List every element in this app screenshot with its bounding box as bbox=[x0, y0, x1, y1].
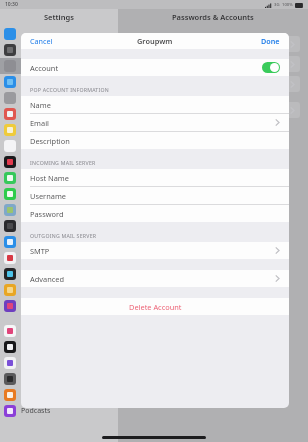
button[interactable]: Email bbox=[21, 114, 289, 132]
button[interactable] bbox=[4, 323, 118, 339]
staticText: Settings bbox=[44, 12, 74, 22]
staticText: 100% bbox=[282, 2, 293, 8]
button[interactable]: Username bbox=[21, 187, 289, 205]
button[interactable] bbox=[4, 154, 118, 170]
staticText: 10:30 bbox=[5, 1, 18, 8]
button[interactable]: Podcasts bbox=[4, 403, 118, 419]
staticText: OUTGOING MAIL SERVER bbox=[30, 232, 97, 239]
button[interactable]: Books bbox=[4, 387, 118, 403]
button[interactable] bbox=[4, 170, 118, 186]
button[interactable]: Name bbox=[21, 96, 289, 114]
button[interactable] bbox=[4, 74, 118, 90]
button[interactable]: Delete Account bbox=[21, 298, 289, 315]
button[interactable] bbox=[4, 122, 118, 138]
button[interactable] bbox=[4, 355, 118, 371]
button[interactable]: Account bbox=[30, 59, 280, 76]
button[interactable]: Cancel bbox=[21, 33, 62, 49]
button[interactable] bbox=[4, 58, 118, 74]
staticText: Cancel bbox=[30, 36, 53, 46]
button[interactable] bbox=[4, 202, 118, 218]
staticText: POP ACCOUNT INFORMATION bbox=[30, 86, 109, 93]
staticText: Host Name bbox=[30, 173, 280, 183]
staticText: SMTP bbox=[30, 246, 275, 256]
button[interactable] bbox=[4, 26, 118, 42]
button[interactable] bbox=[4, 266, 118, 282]
staticText: Groupwm bbox=[137, 36, 173, 46]
staticText: Done bbox=[261, 36, 280, 46]
button[interactable] bbox=[126, 36, 300, 52]
button[interactable] bbox=[4, 282, 118, 298]
staticText: Delete Account bbox=[129, 302, 182, 312]
button[interactable]: SMTP bbox=[21, 242, 289, 259]
button[interactable]: Host Name bbox=[21, 169, 289, 187]
button[interactable]: Advanced bbox=[21, 270, 289, 287]
button[interactable] bbox=[4, 234, 118, 250]
staticText: Description bbox=[30, 136, 280, 146]
staticText: 3G bbox=[274, 2, 280, 8]
button[interactable] bbox=[126, 102, 300, 118]
staticText: Podcasts bbox=[21, 406, 51, 416]
staticText: Username bbox=[30, 191, 280, 201]
staticText: INCOMING MAIL SERVER bbox=[30, 159, 96, 166]
staticText: Account bbox=[30, 63, 262, 73]
button[interactable] bbox=[4, 138, 118, 154]
staticText: Passwords & Accounts bbox=[172, 12, 254, 22]
staticText: Name bbox=[30, 100, 280, 110]
staticText: Email bbox=[30, 118, 275, 128]
button[interactable] bbox=[4, 106, 118, 122]
button[interactable] bbox=[4, 339, 118, 355]
button[interactable] bbox=[4, 186, 118, 202]
staticText: Advanced bbox=[30, 274, 275, 284]
button[interactable] bbox=[4, 298, 118, 314]
button[interactable] bbox=[4, 218, 118, 234]
button[interactable] bbox=[4, 42, 118, 58]
button[interactable] bbox=[126, 76, 300, 92]
button[interactable] bbox=[4, 250, 118, 266]
staticText: Password bbox=[30, 209, 280, 219]
button[interactable]: Description bbox=[21, 132, 289, 149]
button[interactable]: Account enabled bbox=[262, 62, 280, 73]
button[interactable] bbox=[126, 56, 300, 72]
button[interactable]: Done bbox=[252, 33, 289, 49]
button[interactable] bbox=[4, 371, 118, 387]
button[interactable]: Password bbox=[21, 205, 289, 222]
button[interactable] bbox=[4, 90, 118, 106]
